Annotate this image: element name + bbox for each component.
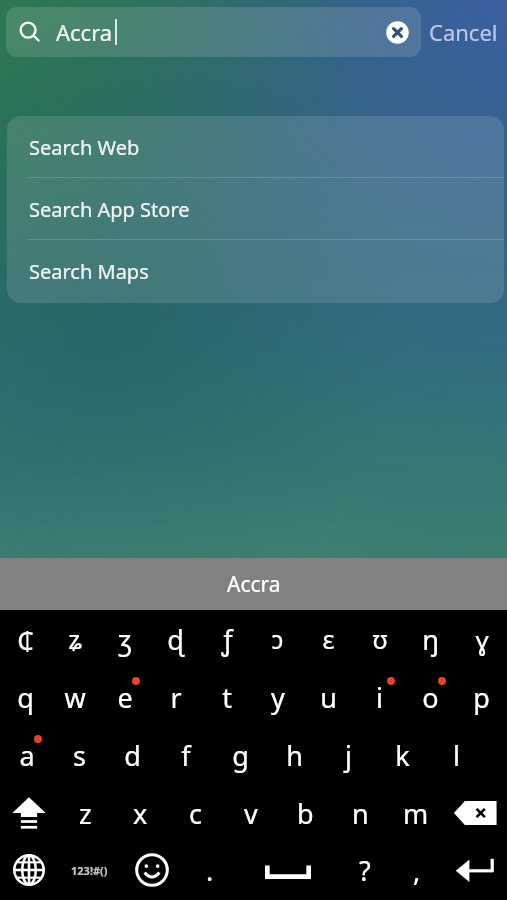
button[interactable]: g bbox=[213, 726, 267, 784]
staticText: Search App Store bbox=[29, 196, 190, 223]
staticText: Search Web bbox=[29, 134, 140, 161]
staticText: u bbox=[320, 679, 337, 716]
button[interactable]: ɔ bbox=[252, 610, 303, 668]
staticText: w bbox=[64, 679, 86, 716]
staticText: . bbox=[206, 852, 214, 889]
staticText: ƒ bbox=[221, 621, 233, 658]
button[interactable]: ɖ bbox=[150, 610, 201, 668]
staticText: Cancel bbox=[429, 17, 498, 47]
staticText: Search Maps bbox=[29, 258, 149, 285]
staticText: , bbox=[413, 852, 421, 889]
staticText: Accra bbox=[56, 17, 113, 47]
button[interactable]: v bbox=[223, 784, 278, 842]
button[interactable]: Change language bbox=[0, 842, 58, 898]
button[interactable]: Accra bbox=[6, 7, 421, 57]
staticText: ʊ bbox=[372, 622, 388, 656]
button[interactable]: . bbox=[184, 842, 236, 898]
staticText: v bbox=[244, 795, 258, 832]
button[interactable]: ŋ bbox=[405, 610, 456, 668]
staticText: f bbox=[181, 737, 191, 774]
button[interactable]: Space bbox=[236, 842, 339, 898]
staticText: y bbox=[271, 679, 285, 716]
button[interactable]: m bbox=[388, 784, 443, 842]
button[interactable]: ɛ bbox=[303, 610, 354, 668]
button[interactable]: p bbox=[456, 668, 507, 726]
staticText: m bbox=[403, 795, 429, 832]
button[interactable]: Clear text bbox=[381, 16, 413, 48]
staticText: ʑ bbox=[68, 622, 82, 656]
button[interactable]: ₵ bbox=[0, 610, 50, 668]
button[interactable]: o bbox=[405, 668, 456, 726]
button[interactable]: 123!#() bbox=[58, 842, 120, 898]
staticText: p bbox=[473, 679, 490, 716]
button[interactable]: e bbox=[100, 668, 150, 726]
staticText: z bbox=[79, 795, 92, 832]
staticText: x bbox=[133, 795, 148, 832]
staticText: i bbox=[376, 679, 383, 716]
button[interactable]: Shift bbox=[0, 784, 58, 842]
button[interactable]: s bbox=[53, 726, 106, 784]
staticText: e bbox=[117, 679, 133, 716]
button[interactable]: z bbox=[58, 784, 113, 842]
staticText: ŋ bbox=[422, 621, 439, 658]
button[interactable]: f bbox=[159, 726, 213, 784]
staticText: b bbox=[297, 795, 314, 832]
button[interactable]: Enter bbox=[443, 842, 507, 898]
staticText: c bbox=[189, 795, 202, 832]
staticText: h bbox=[286, 737, 303, 774]
button[interactable]: Accra bbox=[0, 558, 507, 610]
button[interactable]: t bbox=[201, 668, 252, 726]
staticText: r bbox=[170, 679, 182, 716]
staticText: t bbox=[222, 679, 232, 716]
button[interactable]: u bbox=[303, 668, 354, 726]
button[interactable]: j bbox=[321, 726, 375, 784]
button[interactable]: a bbox=[0, 726, 53, 784]
button[interactable]: ʑ bbox=[50, 610, 100, 668]
button[interactable]: ɣ bbox=[456, 610, 507, 668]
staticText: Accra bbox=[227, 570, 281, 599]
staticText: ʒ bbox=[118, 621, 132, 658]
button[interactable]: ƒ bbox=[201, 610, 252, 668]
staticText: k bbox=[395, 737, 410, 774]
button[interactable]: Search Web bbox=[7, 116, 504, 178]
button[interactable]: , bbox=[391, 842, 443, 898]
button[interactable]: ? bbox=[339, 842, 391, 898]
staticText: j bbox=[345, 737, 352, 774]
button[interactable]: w bbox=[50, 668, 100, 726]
staticText: ɖ bbox=[167, 621, 184, 658]
button[interactable]: i bbox=[354, 668, 405, 726]
button[interactable]: d bbox=[106, 726, 159, 784]
button[interactable]: y bbox=[252, 668, 303, 726]
staticText: ɛ bbox=[322, 622, 335, 656]
staticText: a bbox=[19, 737, 35, 774]
staticText: n bbox=[352, 795, 369, 832]
staticText: d bbox=[124, 737, 141, 774]
button[interactable]: c bbox=[168, 784, 223, 842]
button[interactable]: k bbox=[375, 726, 429, 784]
staticText: l bbox=[453, 737, 460, 774]
button[interactable]: x bbox=[113, 784, 168, 842]
button[interactable]: h bbox=[267, 726, 321, 784]
staticText: q bbox=[17, 679, 34, 716]
staticText: ɔ bbox=[271, 622, 284, 656]
button[interactable]: Emoji bbox=[120, 842, 184, 898]
button[interactable]: l bbox=[429, 726, 483, 784]
staticText: o bbox=[422, 679, 439, 716]
button[interactable]: q bbox=[0, 668, 50, 726]
button[interactable]: ʊ bbox=[354, 610, 405, 668]
button[interactable]: r bbox=[150, 668, 201, 726]
staticText: g bbox=[232, 737, 249, 774]
button[interactable]: Search Maps bbox=[7, 240, 504, 302]
button[interactable]: Backspace bbox=[443, 784, 507, 842]
button[interactable]: Cancel bbox=[429, 7, 498, 57]
button[interactable]: Search App Store bbox=[7, 178, 504, 240]
button[interactable]: ʒ bbox=[100, 610, 150, 668]
button[interactable]: b bbox=[278, 784, 333, 842]
staticText: s bbox=[73, 737, 86, 774]
staticText: ɣ bbox=[475, 622, 489, 657]
staticText: ₵ bbox=[17, 622, 34, 657]
button[interactable]: n bbox=[333, 784, 388, 842]
staticText: 123!#() bbox=[71, 863, 108, 878]
staticText: ? bbox=[359, 852, 371, 889]
